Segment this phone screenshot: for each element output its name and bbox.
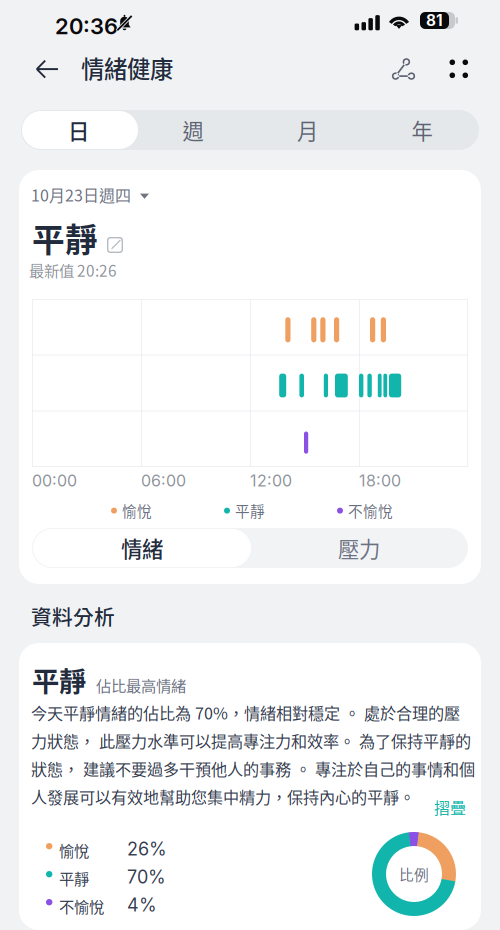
staticText: 人發展可以有效地幫助您集中精力，保持內心的平靜。 bbox=[31, 785, 415, 808]
staticText: 情緒健康 bbox=[81, 51, 173, 85]
staticText: 今天平靜情緒的佔比為 70%，情緒相對穩定 。 處於合理的壓 bbox=[31, 701, 460, 724]
staticText: 00:00 bbox=[32, 471, 77, 490]
button[interactable]: 週 bbox=[136, 111, 249, 149]
staticText: 不愉悅 bbox=[59, 895, 104, 917]
staticText: 06:00 bbox=[141, 471, 186, 490]
staticText: 81 bbox=[426, 11, 443, 30]
staticText: 平靜 bbox=[32, 660, 86, 700]
staticText: 愉悅 bbox=[59, 839, 89, 861]
staticText: 不愉悅 bbox=[348, 500, 393, 521]
staticText: 平靜 bbox=[235, 500, 265, 521]
button[interactable]: 月 bbox=[251, 111, 364, 149]
staticText: 狀態， 建議不要過多干預他人的事務 。 專注於自己的事情和個 bbox=[31, 757, 475, 780]
staticText: 18:00 bbox=[359, 471, 401, 490]
staticText: 20:36 bbox=[55, 13, 118, 40]
staticText: 摺疊 bbox=[434, 795, 466, 819]
staticText: 日 bbox=[68, 115, 89, 145]
staticText: 平靜 bbox=[32, 214, 98, 261]
staticText: 10月23日週四 bbox=[31, 183, 131, 206]
staticText: 70% bbox=[127, 866, 166, 888]
button[interactable]: 年 bbox=[365, 111, 478, 149]
staticText: 比例 bbox=[399, 863, 429, 885]
staticText: 愉悅 bbox=[122, 500, 152, 521]
staticText: 週 bbox=[182, 115, 203, 145]
staticText: 月 bbox=[297, 115, 318, 145]
staticText: 最新值 20:26 bbox=[29, 259, 117, 281]
staticText: 情緒 bbox=[121, 533, 163, 563]
staticText: 平靜 bbox=[59, 867, 89, 889]
staticText: 資料分析 bbox=[31, 601, 115, 631]
staticText: 年 bbox=[411, 115, 432, 145]
button[interactable]: 壓力 bbox=[251, 529, 467, 567]
staticText: 佔比最高情緒 bbox=[96, 674, 186, 696]
staticText: 12:00 bbox=[250, 471, 292, 490]
button[interactable]: 摺疊 bbox=[426, 798, 466, 816]
staticText: 壓力 bbox=[338, 533, 380, 563]
button[interactable]: 日 bbox=[22, 111, 135, 149]
staticText: 4% bbox=[127, 894, 157, 916]
staticText: 26% bbox=[127, 838, 167, 860]
button[interactable]: 更多 bbox=[437, 47, 481, 91]
button[interactable]: 返回 bbox=[25, 47, 69, 91]
staticText: 力狀態， 此壓力水準可以提高專注力和效率。 為了保持平靜的 bbox=[31, 729, 471, 752]
button[interactable]: 情緒 bbox=[33, 529, 251, 567]
button[interactable]: 分享 bbox=[382, 47, 426, 91]
